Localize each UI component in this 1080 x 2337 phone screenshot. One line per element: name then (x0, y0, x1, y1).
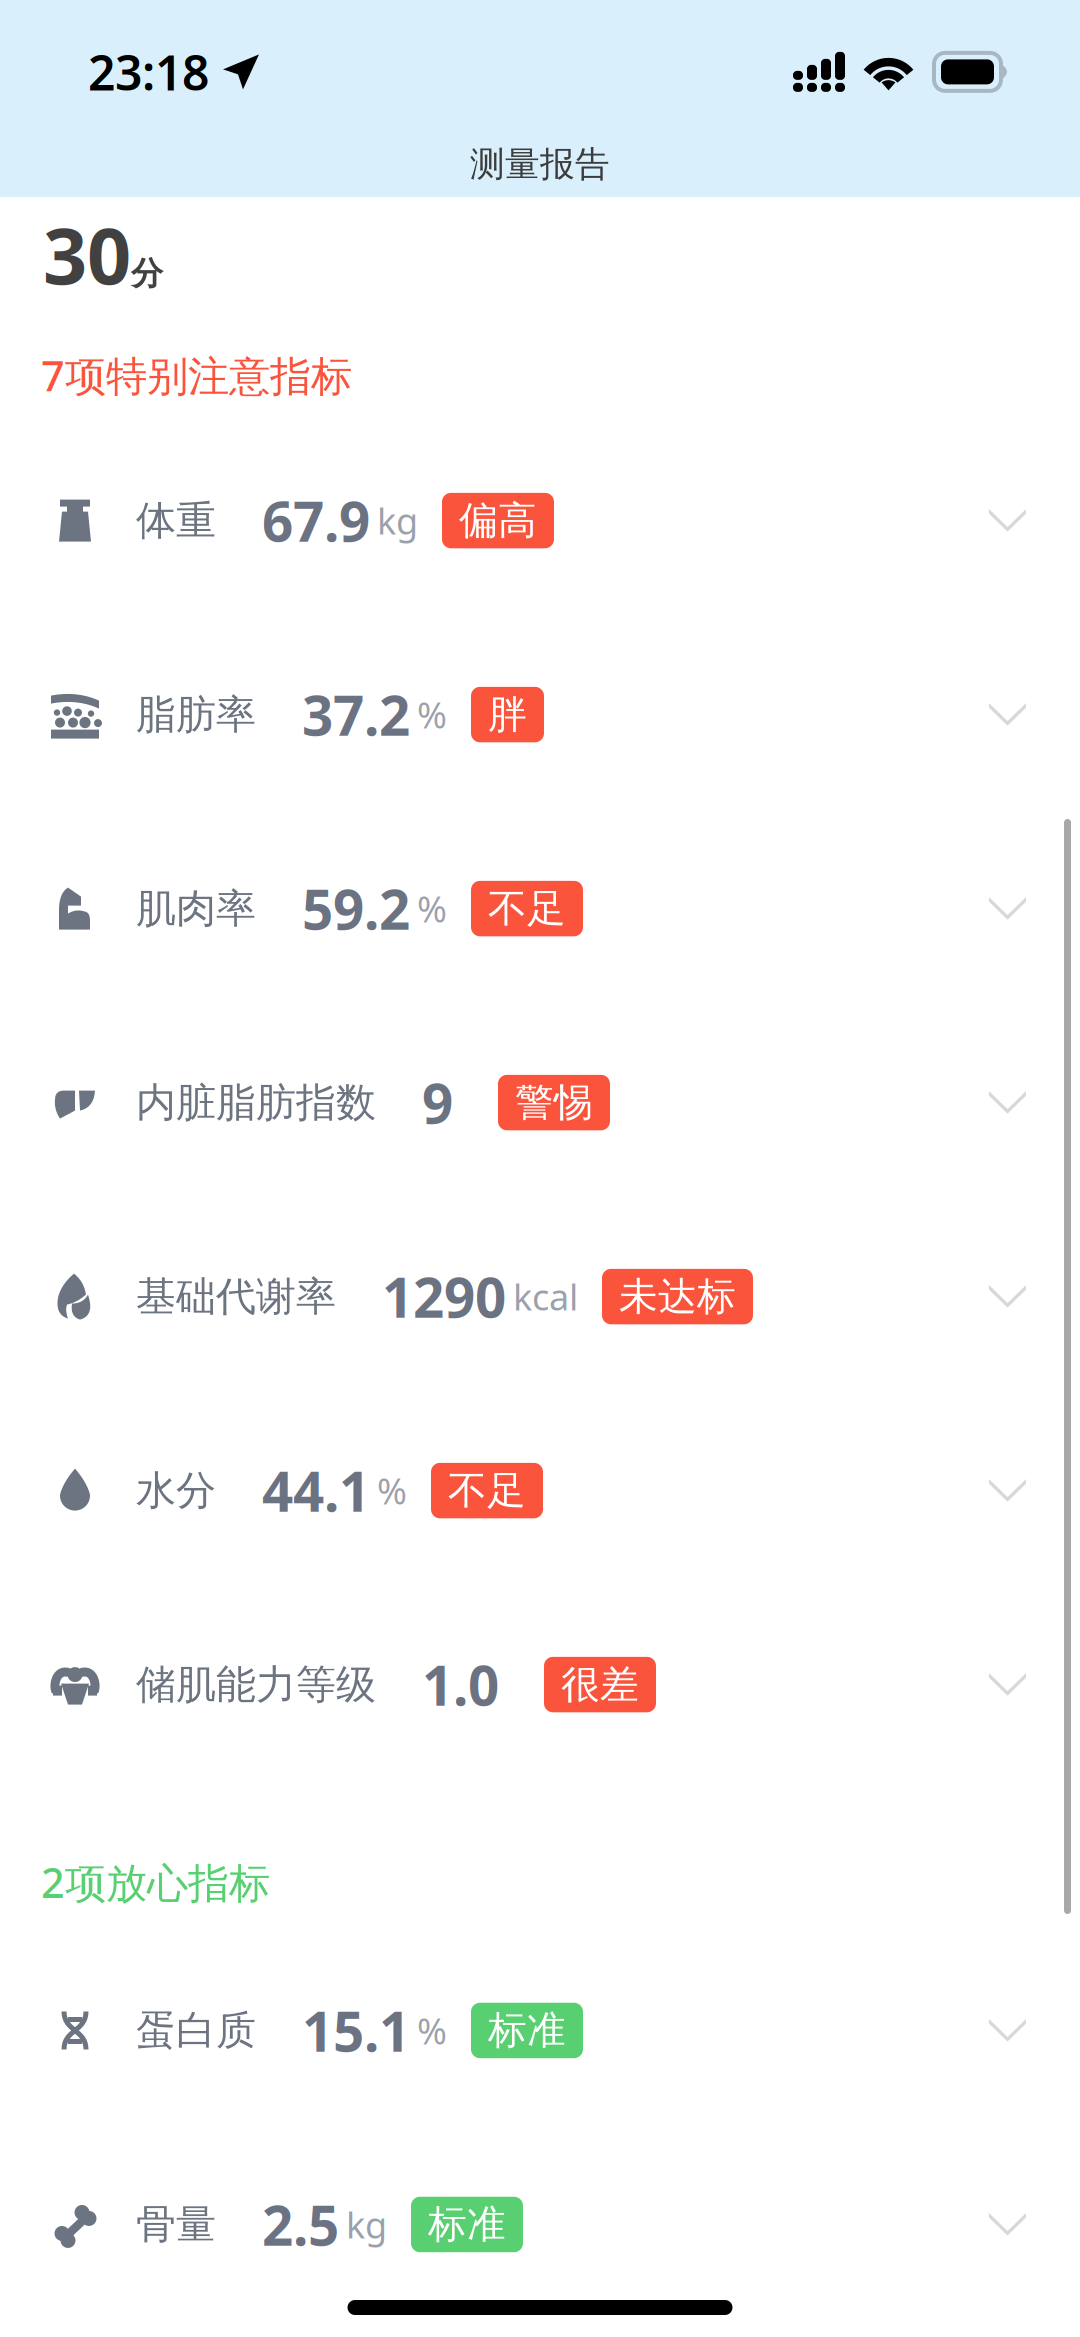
staticText: 蛋白质 (136, 2006, 256, 2055)
staticText: 67.9 (262, 484, 370, 557)
staticText: 内脏脂肪指数 (136, 1078, 376, 1127)
staticText: 1290 (382, 1260, 506, 1333)
button[interactable]: 基础代谢率 (0, 1200, 1080, 1394)
staticText: 30 (43, 203, 131, 306)
staticText: 7项特别注意指标 (41, 348, 352, 403)
staticText: 基础代谢率 (136, 1272, 336, 1321)
staticText: 37.2 (302, 678, 410, 751)
staticText: 警惕 (515, 1079, 593, 1126)
staticText: 44.1 (262, 1454, 370, 1527)
staticText: % (377, 1467, 407, 1514)
staticText: 脂肪率 (136, 690, 256, 739)
staticText: % (417, 885, 447, 932)
staticText: 标准 (428, 2201, 506, 2248)
button[interactable]: 脂肪率 (0, 618, 1080, 812)
staticText: % (417, 2007, 447, 2054)
staticText: 体重 (136, 496, 216, 545)
staticText: kcal (513, 1273, 578, 1320)
staticText: 15.1 (302, 1994, 410, 2067)
staticText: 未达标 (619, 1273, 736, 1320)
staticText: 23:18 (88, 40, 209, 104)
button[interactable]: 蛋白质 (0, 1933, 1080, 2127)
staticText: 9 (422, 1066, 453, 1139)
staticText: 测量报告 (470, 143, 610, 186)
staticText: 2项放心指标 (41, 1855, 270, 1909)
staticText: 1.0 (422, 1648, 499, 1721)
staticText: 标准 (488, 2007, 566, 2054)
staticText: 储肌能力等级 (136, 1660, 376, 1709)
button[interactable]: 肌肉率 (0, 812, 1080, 1006)
button[interactable]: 体重 (0, 424, 1080, 618)
staticText: kg (377, 497, 418, 544)
staticText: 很差 (561, 1661, 639, 1708)
staticText: 不足 (488, 885, 566, 932)
staticText: 分 (131, 254, 163, 293)
staticText: 2.5 (262, 2188, 339, 2261)
staticText: % (417, 691, 447, 738)
button[interactable]: 水分 (0, 1394, 1080, 1588)
staticText: 59.2 (302, 872, 410, 945)
button[interactable]: 内脏脂肪指数 (0, 1006, 1080, 1200)
staticText: 肌肉率 (136, 884, 256, 933)
button[interactable]: 骨量 (0, 2127, 1080, 2321)
staticText: 水分 (136, 1466, 216, 1515)
staticText: 不足 (448, 1467, 526, 1514)
staticText: kg (346, 2201, 387, 2248)
staticText: 胖 (488, 691, 527, 738)
staticText: 骨量 (136, 2200, 216, 2249)
staticText: 偏高 (459, 497, 537, 544)
button[interactable]: 储肌能力等级 (0, 1588, 1080, 1782)
